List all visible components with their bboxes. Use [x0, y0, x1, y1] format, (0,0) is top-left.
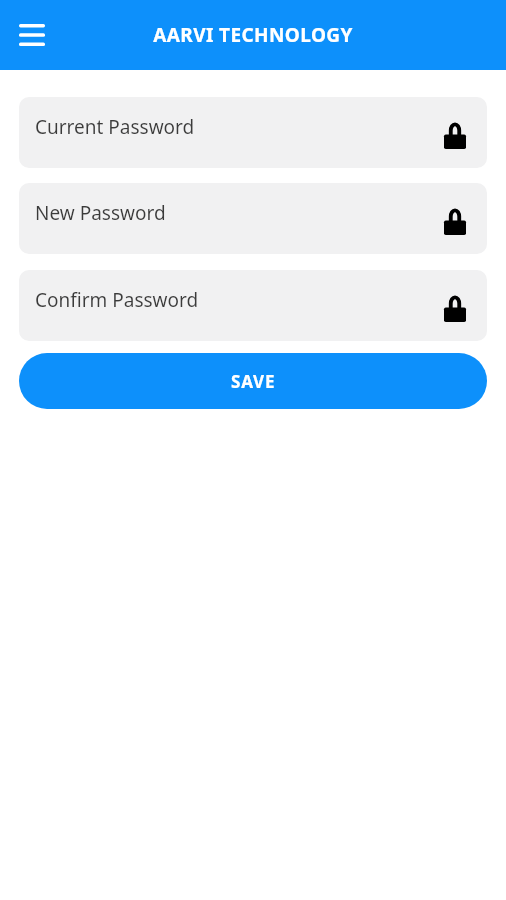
staticText: New Password	[35, 200, 166, 226]
button[interactable]: Confirm Password	[19, 270, 487, 341]
button[interactable]: Current Password	[19, 97, 487, 168]
button[interactable]: SAVE	[19, 353, 487, 409]
staticText: SAVE	[231, 370, 276, 393]
staticText: AARVI TECHNOLOGY	[60, 22, 446, 48]
button[interactable]: New Password	[19, 183, 487, 254]
staticText: Current Password	[35, 114, 195, 140]
button[interactable]: Open navigation menu	[11, 14, 53, 56]
staticText: Confirm Password	[35, 287, 199, 313]
